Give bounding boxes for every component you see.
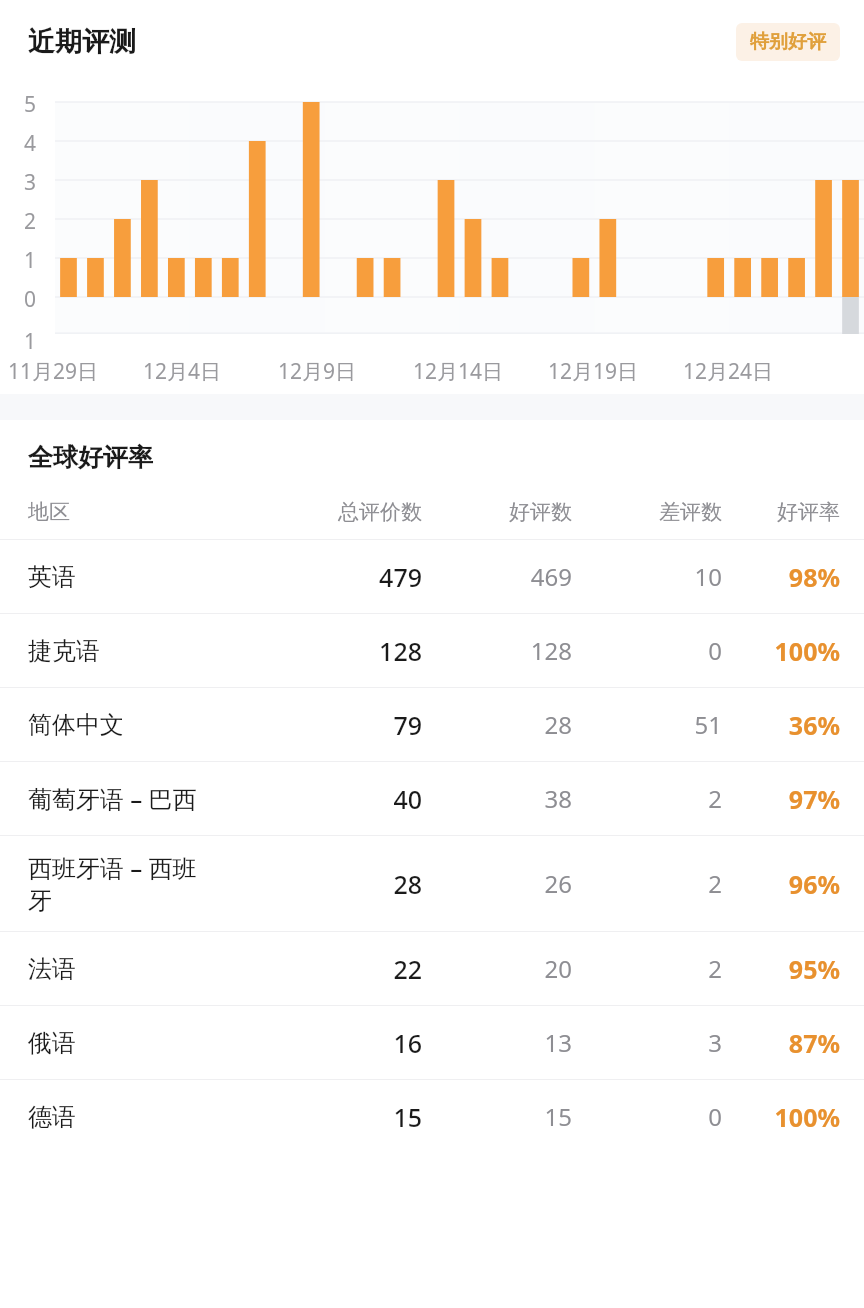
staticText: 地区: [28, 499, 302, 525]
staticText: 51: [572, 708, 722, 741]
staticText: 3: [16, 168, 44, 197]
staticText: 87%: [722, 1026, 840, 1060]
button[interactable]: 特别好评: [736, 23, 840, 61]
staticText: 79: [302, 708, 422, 742]
staticText: 特别好评: [750, 30, 826, 54]
staticText: 德语: [28, 1102, 302, 1132]
staticText: 15: [302, 1100, 422, 1134]
staticText: 15: [422, 1100, 572, 1133]
staticText: 好评数: [422, 499, 572, 525]
staticText: 2: [572, 867, 722, 900]
staticText: 10: [572, 560, 722, 593]
staticText: 96%: [722, 867, 840, 901]
button[interactable]: 西班牙语 – 西班 牙: [0, 836, 864, 931]
staticText: 12月24日: [683, 357, 774, 386]
staticText: 12月19日: [548, 357, 639, 386]
staticText: 16: [302, 1026, 422, 1060]
staticText: 好评率: [722, 499, 840, 525]
staticText: 95%: [722, 952, 840, 986]
staticText: 近期评测: [28, 25, 136, 59]
staticText: 法语: [28, 954, 302, 984]
staticText: 12月9日: [278, 357, 357, 386]
staticText: 100%: [722, 1100, 840, 1134]
staticText: 1: [16, 246, 44, 275]
staticText: 20: [422, 952, 572, 985]
staticText: 26: [422, 867, 572, 900]
staticText: 98%: [722, 560, 840, 594]
button[interactable]: 俄语: [0, 1006, 864, 1079]
staticText: 0: [572, 634, 722, 667]
staticText: 479: [302, 560, 422, 594]
staticText: 0: [16, 285, 44, 314]
staticText: 1: [16, 327, 44, 356]
staticText: 西班牙语 – 西班 牙: [28, 851, 302, 916]
staticText: 2: [572, 782, 722, 815]
staticText: 22: [302, 952, 422, 986]
staticText: 36%: [722, 708, 840, 742]
button[interactable]: 英语: [0, 540, 864, 613]
staticText: 4: [16, 129, 44, 158]
staticText: 469: [422, 560, 572, 593]
staticText: 总评价数: [302, 499, 422, 525]
staticText: 英语: [28, 562, 302, 592]
button[interactable]: 葡萄牙语 – 巴西: [0, 762, 864, 835]
staticText: 俄语: [28, 1028, 302, 1058]
staticText: 3: [572, 1026, 722, 1059]
staticText: 简体中文: [28, 710, 302, 740]
staticText: 11月29日: [8, 357, 99, 386]
staticText: 40: [302, 782, 422, 816]
staticText: 捷克语: [28, 636, 302, 666]
staticText: 葡萄牙语 – 巴西: [28, 782, 302, 815]
staticText: 128: [302, 634, 422, 668]
staticText: 12月4日: [143, 357, 222, 386]
staticText: 100%: [722, 634, 840, 668]
staticText: 28: [422, 708, 572, 741]
staticText: 5: [16, 90, 44, 119]
staticText: 128: [422, 634, 572, 667]
staticText: 13: [422, 1026, 572, 1059]
staticText: 差评数: [572, 499, 722, 525]
staticText: 2: [572, 952, 722, 985]
staticText: 12月14日: [413, 357, 504, 386]
staticText: 2: [16, 207, 44, 236]
staticText: 97%: [722, 782, 840, 816]
staticText: 0: [572, 1100, 722, 1133]
button[interactable]: 法语: [0, 932, 864, 1005]
staticText: 全球好评率: [28, 442, 153, 473]
button[interactable]: 简体中文: [0, 688, 864, 761]
button[interactable]: 捷克语: [0, 614, 864, 687]
staticText: 28: [302, 867, 422, 901]
staticText: 38: [422, 782, 572, 815]
button[interactable]: 德语: [0, 1080, 864, 1153]
